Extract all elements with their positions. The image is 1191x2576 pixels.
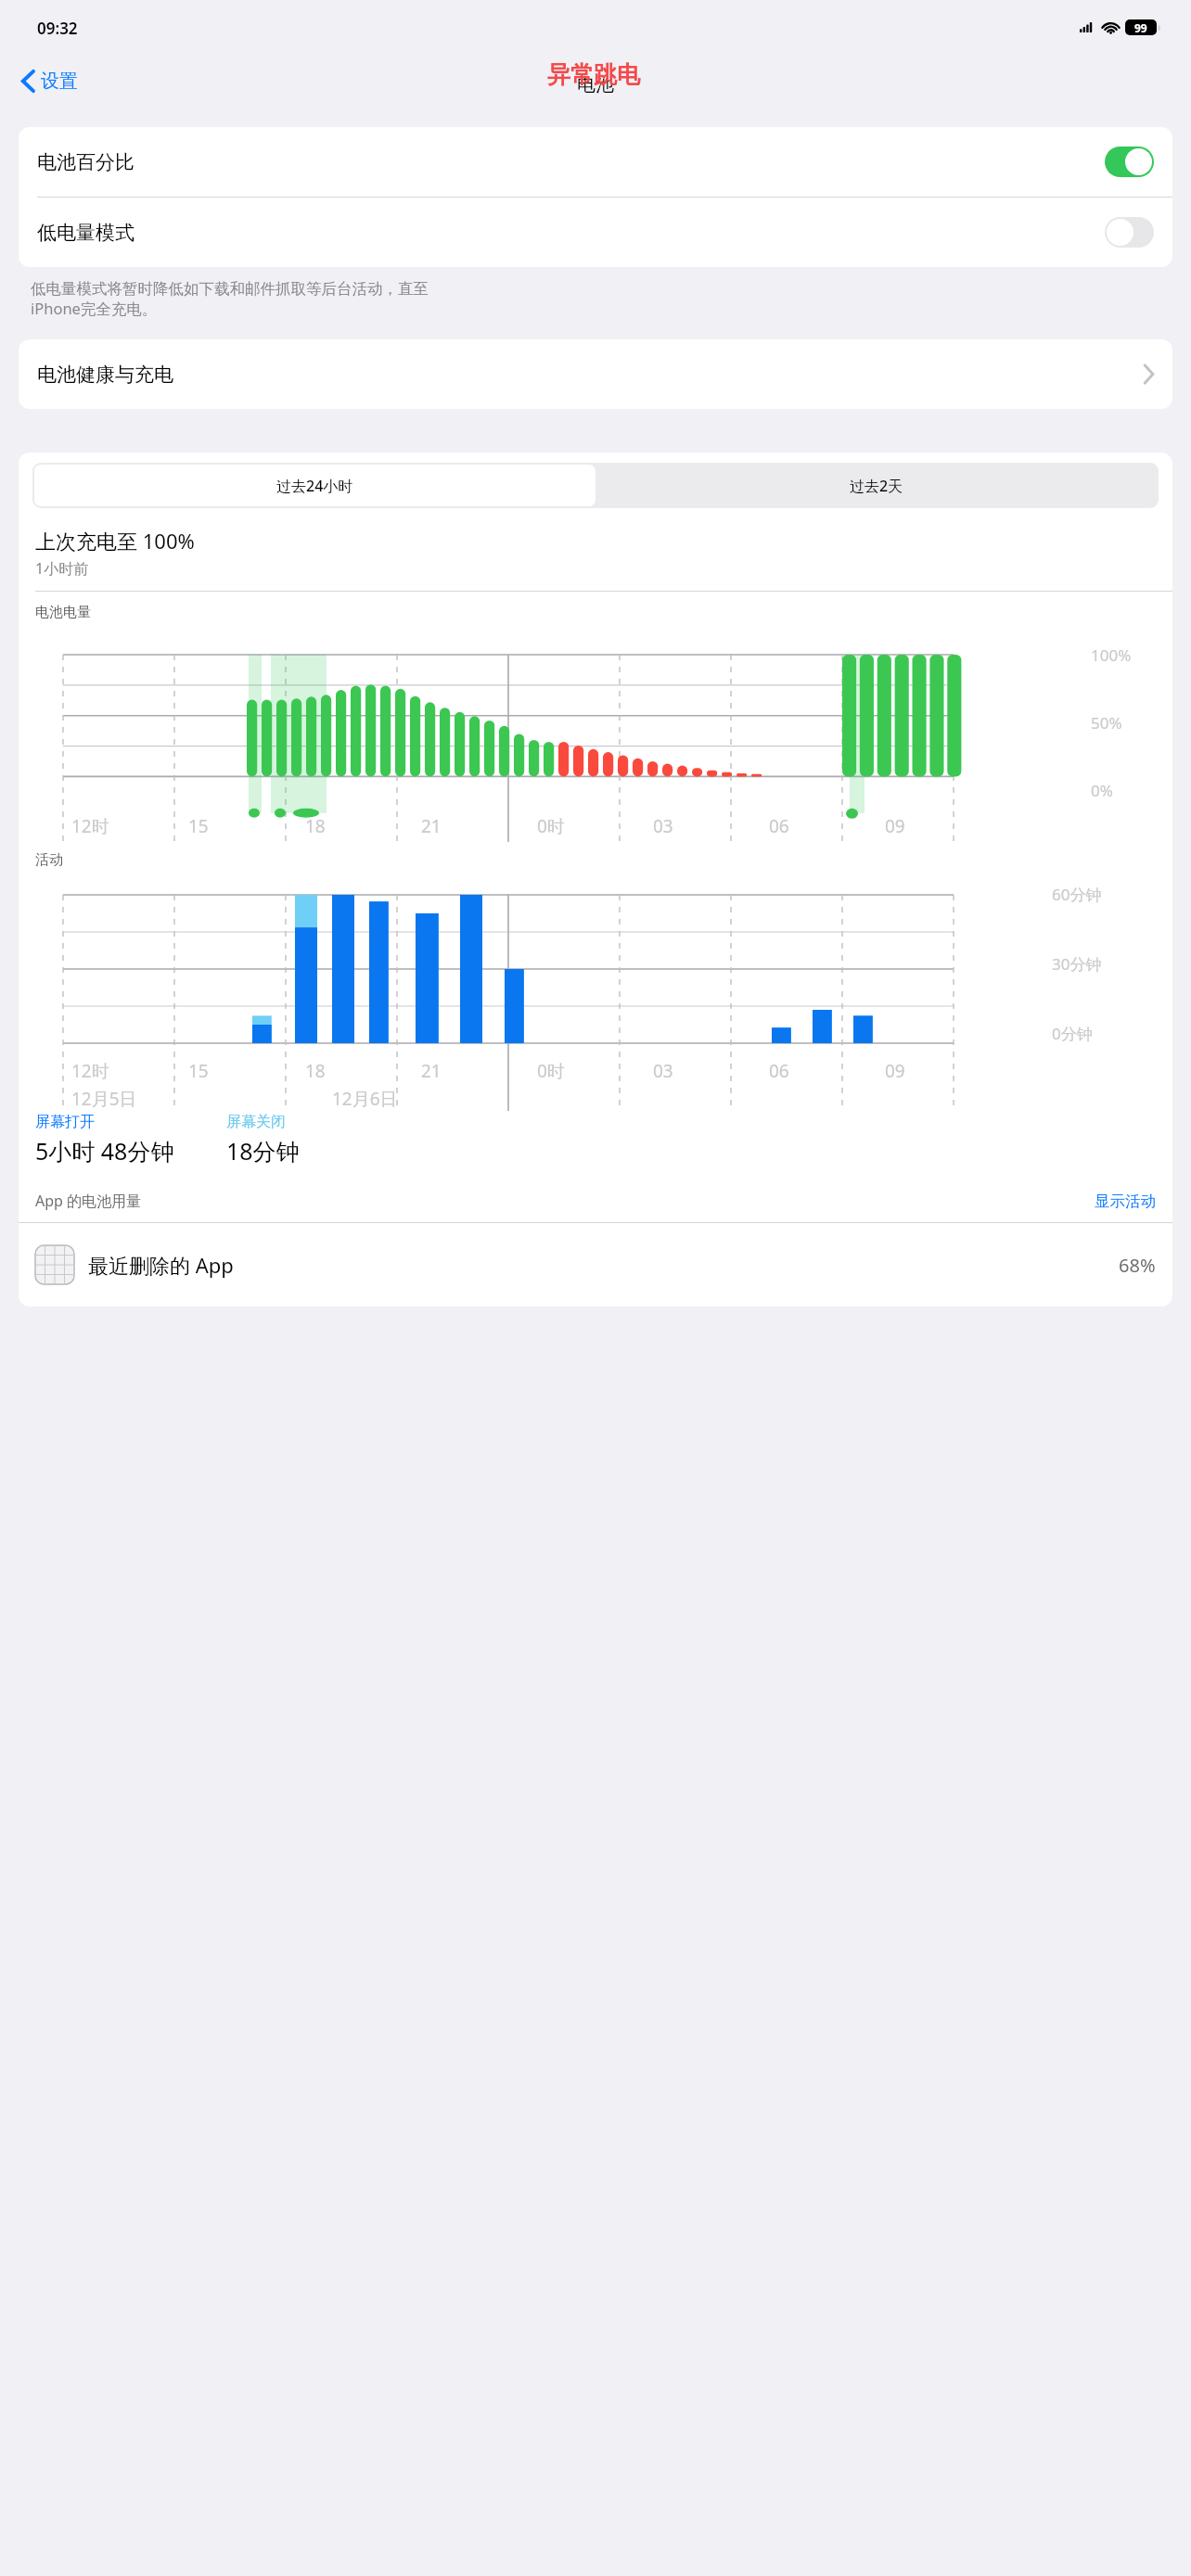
staticText: 0分钟 <box>1052 1023 1093 1044</box>
staticText: 18 <box>305 814 326 838</box>
staticText: 06 <box>769 1059 789 1083</box>
staticText: 活动 <box>35 851 63 869</box>
staticText: 30分钟 <box>1052 953 1102 975</box>
staticText: 99 <box>1134 20 1147 35</box>
staticText: 18分钟 <box>226 1135 300 1167</box>
staticText: 09:32 <box>37 18 78 39</box>
staticText: 100% <box>1091 644 1132 666</box>
staticText: 5小时 48分钟 <box>35 1135 174 1167</box>
button[interactable]: 设置 <box>17 64 83 98</box>
staticText: 68% <box>1119 1253 1156 1278</box>
staticText: 09 <box>885 1059 905 1083</box>
button[interactable]: 过去24小时 <box>34 465 595 506</box>
staticText: 设置 <box>41 70 78 93</box>
staticText: 电池健康与充电 <box>37 363 173 387</box>
staticText: App 的电池用量 <box>35 1191 142 1211</box>
staticText: 低电量模式 <box>37 221 134 245</box>
button[interactable]: 低电量模式 <box>1105 217 1154 248</box>
staticText: 12月5日 <box>71 1087 137 1111</box>
button[interactable]: 电池百分比 <box>19 127 1172 197</box>
staticText: 12时 <box>71 814 109 838</box>
staticText: 15 <box>188 1059 209 1083</box>
button[interactable]: 过去2天 <box>595 465 1157 506</box>
staticText: 电池 <box>577 73 614 96</box>
button[interactable]: 低电量模式 <box>19 198 1172 267</box>
button[interactable]: 最近删除的 App <box>19 1223 1172 1307</box>
staticText: 1小时前 <box>35 558 89 579</box>
staticText: 最近删除的 App <box>88 1251 234 1279</box>
staticText: 21 <box>421 1059 442 1083</box>
staticText: 12时 <box>71 1059 109 1083</box>
staticText: 21 <box>421 814 442 838</box>
staticText: 03 <box>653 1059 673 1083</box>
button[interactable]: 显示活动 <box>1095 1192 1156 1211</box>
button[interactable]: 屏幕打开 <box>35 1113 95 1131</box>
staticText: 过去24小时 <box>276 476 353 496</box>
staticText: 异常跳电 <box>547 60 640 89</box>
staticText: 过去2天 <box>850 476 903 496</box>
staticText: 低电量模式将暂时降低如下载和邮件抓取等后台活动，直至 iPhone完全充电。 <box>31 279 429 319</box>
staticText: 电池电量 <box>35 604 91 621</box>
staticText: 15 <box>188 814 209 838</box>
staticText: 06 <box>769 814 789 838</box>
staticText: 0时 <box>537 814 565 838</box>
staticText: 上次充电至 100% <box>35 527 195 555</box>
button[interactable]: 电池健康与充电 <box>19 339 1172 409</box>
staticText: 03 <box>653 814 673 838</box>
staticText: 18 <box>305 1059 326 1083</box>
button[interactable]: 屏幕关闭 <box>226 1113 286 1131</box>
staticText: 电池百分比 <box>37 150 134 174</box>
staticText: 0% <box>1091 780 1113 801</box>
staticText: 60分钟 <box>1052 884 1102 905</box>
staticText: 50% <box>1091 712 1122 733</box>
staticText: 0时 <box>537 1059 565 1083</box>
button[interactable]: 电池百分比 <box>1105 147 1154 177</box>
staticText: 12月6日 <box>332 1087 398 1111</box>
staticText: 09 <box>885 814 905 838</box>
